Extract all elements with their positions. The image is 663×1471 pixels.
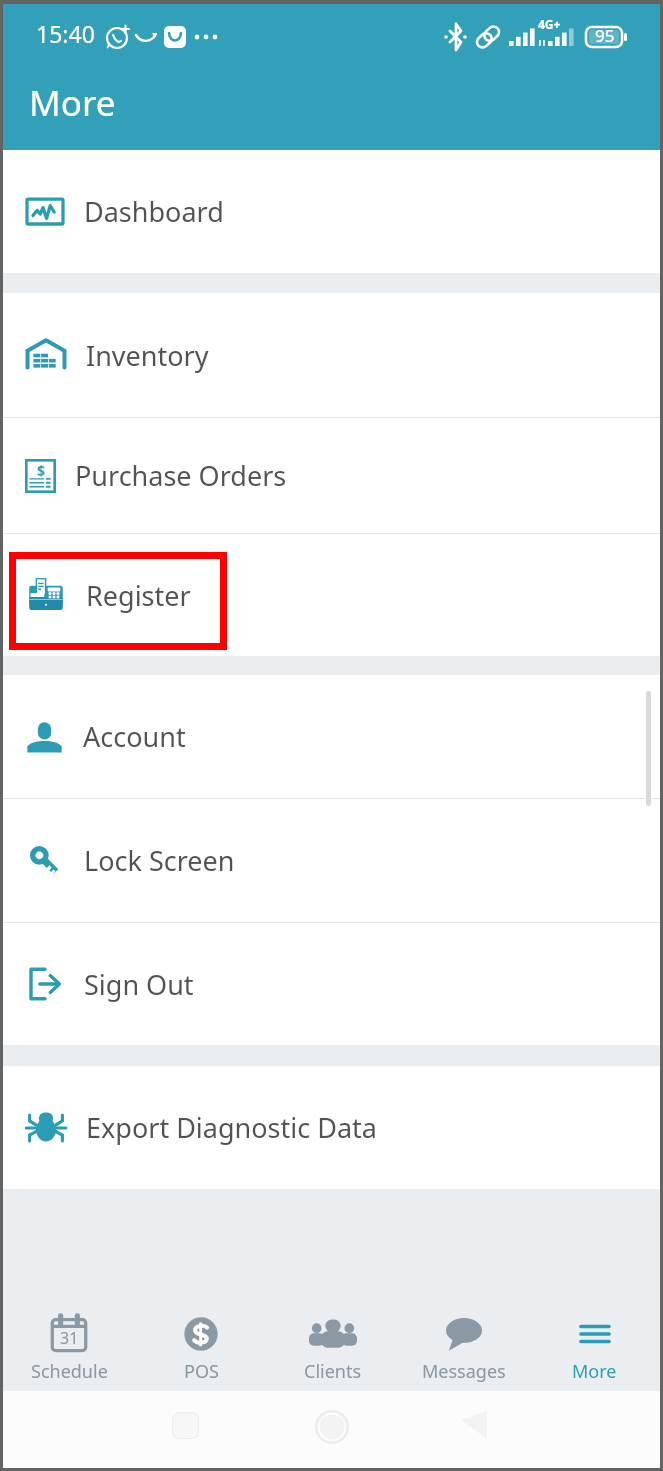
button[interactable]: Inventory [3, 293, 660, 417]
button[interactable]: Sign Out [3, 923, 660, 1045]
staticText: Messages [422, 1359, 506, 1384]
staticText: Export Diagnostic Data [86, 1109, 377, 1146]
staticText: 4G+ [538, 16, 561, 32]
staticText: More [29, 79, 116, 127]
button[interactable]: Account [3, 675, 660, 798]
button[interactable]: More [529, 1290, 660, 1391]
button[interactable]: Clients [267, 1290, 398, 1391]
staticText: 31 [60, 1327, 79, 1349]
button[interactable]: Dashboard [3, 150, 660, 273]
button[interactable]: Export Diagnostic Data [3, 1066, 660, 1189]
staticText: 15:40 [36, 18, 95, 49]
button[interactable]: Home [288, 1395, 376, 1459]
staticText: Account [83, 718, 186, 755]
button[interactable]: Register [3, 534, 660, 656]
staticText: $ [37, 461, 46, 480]
button[interactable]: Lock Screen [3, 799, 660, 922]
staticText: Clients [304, 1359, 362, 1384]
staticText: More [572, 1359, 617, 1384]
staticText: Schedule [31, 1359, 108, 1384]
staticText: Lock Screen [84, 842, 235, 879]
staticText: Register [86, 577, 191, 614]
staticText: Sign Out [84, 966, 194, 1003]
staticText: POS [184, 1359, 219, 1384]
button[interactable]: 31 [3, 1290, 135, 1391]
button[interactable]: $ [3, 418, 660, 533]
staticText: Purchase Orders [75, 457, 287, 494]
staticText: Inventory [86, 337, 209, 374]
button[interactable]: POS [135, 1290, 267, 1391]
staticText: 95 [595, 24, 615, 47]
button[interactable]: Messages [398, 1290, 529, 1391]
staticText: Dashboard [84, 193, 224, 230]
